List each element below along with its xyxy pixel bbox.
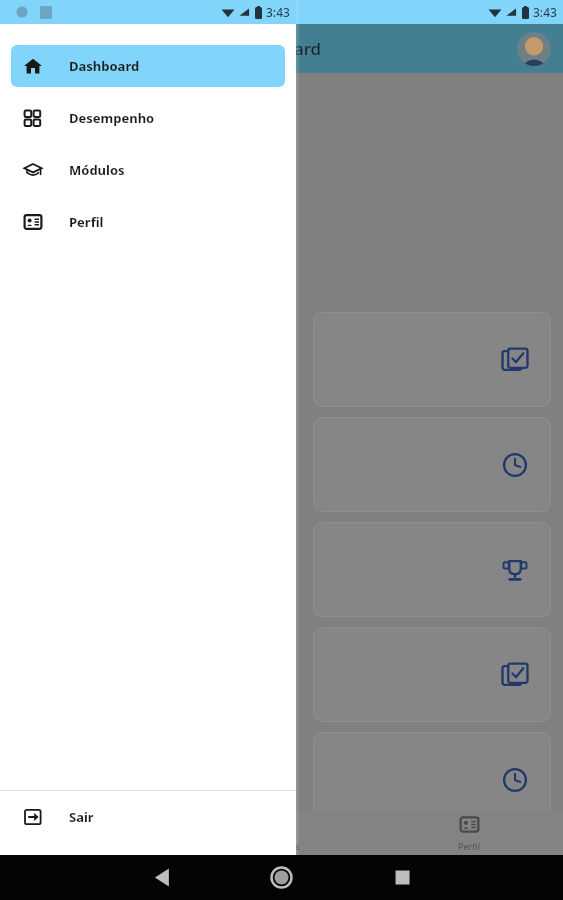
button[interactable]: Sair	[11, 796, 285, 838]
button[interactable]	[313, 312, 551, 407]
staticText: Desempenho	[69, 109, 155, 127]
staticText: Perfil	[458, 840, 480, 852]
button[interactable]: Módulos	[11, 149, 285, 191]
staticText: Módulos	[263, 840, 300, 852]
staticText: Dashboard	[69, 57, 140, 75]
button[interactable]	[313, 417, 551, 512]
button[interactable]	[313, 732, 551, 827]
staticText: Sair	[69, 808, 94, 826]
button[interactable]: Dashboard	[11, 45, 285, 87]
staticText: Módulos	[69, 161, 125, 179]
button[interactable]: Desempenho	[11, 97, 285, 139]
staticText: Perfil	[69, 213, 104, 231]
button[interactable]	[313, 627, 551, 722]
staticText: 3:43	[533, 4, 557, 20]
staticText: 3:43	[266, 4, 290, 20]
staticText: Dashboard	[232, 37, 322, 60]
button[interactable]: Desempenho	[0, 811, 187, 855]
button[interactable]	[313, 522, 551, 617]
button[interactable]: Perfil	[11, 201, 285, 243]
button[interactable]: Perfil	[517, 32, 551, 66]
button[interactable]: Perfil	[375, 811, 563, 855]
button[interactable]: Módulos	[187, 811, 375, 855]
